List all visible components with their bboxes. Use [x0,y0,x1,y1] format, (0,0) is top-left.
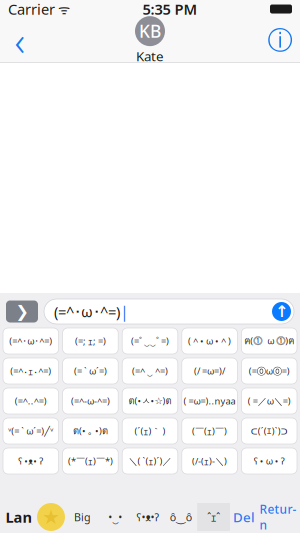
button[interactable]: (=⓪ω⓪=) [241,358,297,384]
button[interactable]: (=^･ｴ･^=) [3,358,59,384]
button[interactable]: Back [0,18,40,62]
button[interactable]: (/-(ｴ)-＼) [182,448,237,474]
button[interactable]: ( =／ω＼=) [241,388,297,414]
button[interactable]: Details [260,18,300,62]
staticText: 5:35 PM [142,0,197,19]
staticText: (=ﾟ‿‿ﾟ=) [131,335,169,347]
button[interactable]: ฅ(⓵ ω ⓵)ฅ [241,328,297,354]
staticText: (=^..^=) [15,395,47,407]
staticText: ᯤ [55,0,70,18]
staticText: ʕ • ω • ʔ [254,455,285,467]
button[interactable]: ต(•ㅅ•☆)ต [122,388,178,414]
staticText: Return [259,501,296,533]
button[interactable]: ʕ • ω • ʔ [241,448,297,474]
button[interactable]: (=^-ω-^=) [63,388,118,414]
button[interactable]: ȏ⏝ȏ [164,503,197,531]
button[interactable]: ᑕ(´(ｴ)`)ᑐ [241,418,297,444]
staticText: (/ =ω=)/ [194,365,225,377]
staticText: ⓘ [267,25,292,56]
staticText: (=; ｴ; =) [75,335,106,347]
button[interactable]: (=^..^=) [3,388,59,414]
staticText: (= ` ω´=) [74,365,107,377]
button[interactable]: ต(• ｡ •)ต [63,418,118,444]
staticText: ȏ⏝ȏ [170,510,192,524]
staticText: Carrier [8,0,55,19]
button[interactable]: (= ` ω´=) [63,358,118,384]
button[interactable]: (=; ｴ; =) [63,328,118,354]
staticText: ต(•ㅅ•☆)ต [128,394,171,408]
staticText: | [120,301,129,322]
staticText: (=^･ω･^=) [9,335,52,347]
button[interactable]: ( =ω=)..nyaa [182,388,237,414]
button[interactable]: ＼( ˋ(ｴ)´)／ [122,448,178,474]
staticText: (=^ ‿ ^=) [132,365,168,377]
staticText: (=⓪ω⓪=) [249,365,290,377]
button[interactable]: (*￣(ｴ)￣*) [63,448,118,474]
staticText: ʕ•ᴥ•ʔ [136,510,159,524]
button[interactable]: •‿• [99,503,132,531]
staticText: ᵛ(= ` ω´=)╱ᵛ [8,425,53,437]
staticText: ( ^ • ω • ^ ) [188,335,231,347]
button[interactable]: KB [135,16,165,65]
staticText: (*￣(ｴ)￣*) [68,455,113,467]
staticText: Big [74,510,91,524]
staticText: ‹ [14,14,25,67]
button[interactable]: Favorites [36,503,66,531]
staticText: (=^･ｴ･^=) [10,365,51,377]
staticText: •‿• [108,510,122,524]
staticText: Del [233,508,255,526]
staticText: Kate [136,47,164,65]
staticText: (￣(ｴ)￣) [192,425,227,437]
staticText: (=^･ω･^=) [54,302,120,321]
button[interactable]: ˆｴˆ [197,503,230,531]
staticText: KB [139,20,161,43]
staticText: Lan [5,507,32,527]
staticText: ＼( ˋ(ｴ)´)／ [128,455,171,467]
button[interactable]: Send [272,302,291,321]
staticText: ( =ω=)..nyaa [184,395,236,407]
staticText: ( =／ω＼=) [248,395,291,407]
staticText: ต(• ｡ •)ต [73,424,108,438]
button[interactable]: (=^･ω･^=) [3,328,59,354]
button[interactable]: ʕ•ᴥ•ʔ [132,503,164,531]
staticText: ᑕ(´(ｴ)`)ᑐ [251,425,288,437]
staticText: (=^-ω-^=) [71,395,110,407]
staticText: ❯ [15,302,28,321]
button[interactable]: (=^ ‿ ^=) [122,358,178,384]
button[interactable]: ʕ •ᴥ• ʔ [3,448,59,474]
button[interactable]: (=ﾟ‿‿ﾟ=) [122,328,178,354]
staticText: (´(ｴ)｀ ) [134,425,165,437]
button[interactable]: Lan [2,503,36,531]
staticText: ★ [42,506,60,528]
staticText: (/-(ｴ)-＼) [192,455,227,467]
staticText: ↑ [275,302,288,321]
staticText: ʕ •ᴥ• ʔ [18,455,43,467]
button[interactable]: ( ^ • ω • ^ ) [182,328,237,354]
button[interactable]: Return [258,503,298,531]
button[interactable]: Big [66,503,99,531]
button[interactable]: Del [230,503,258,531]
button[interactable]: (/ =ω=)/ [182,358,237,384]
button[interactable]: ᵛ(= ` ω´=)╱ᵛ [3,418,59,444]
staticText: ฅ(⓵ ω ⓵)ฅ [244,334,294,348]
button[interactable]: Expand [6,300,38,322]
button[interactable]: (´(ｴ)｀ ) [122,418,178,444]
button[interactable]: (￣(ｴ)￣) [182,418,237,444]
staticText: ˆｴˆ [207,510,220,524]
